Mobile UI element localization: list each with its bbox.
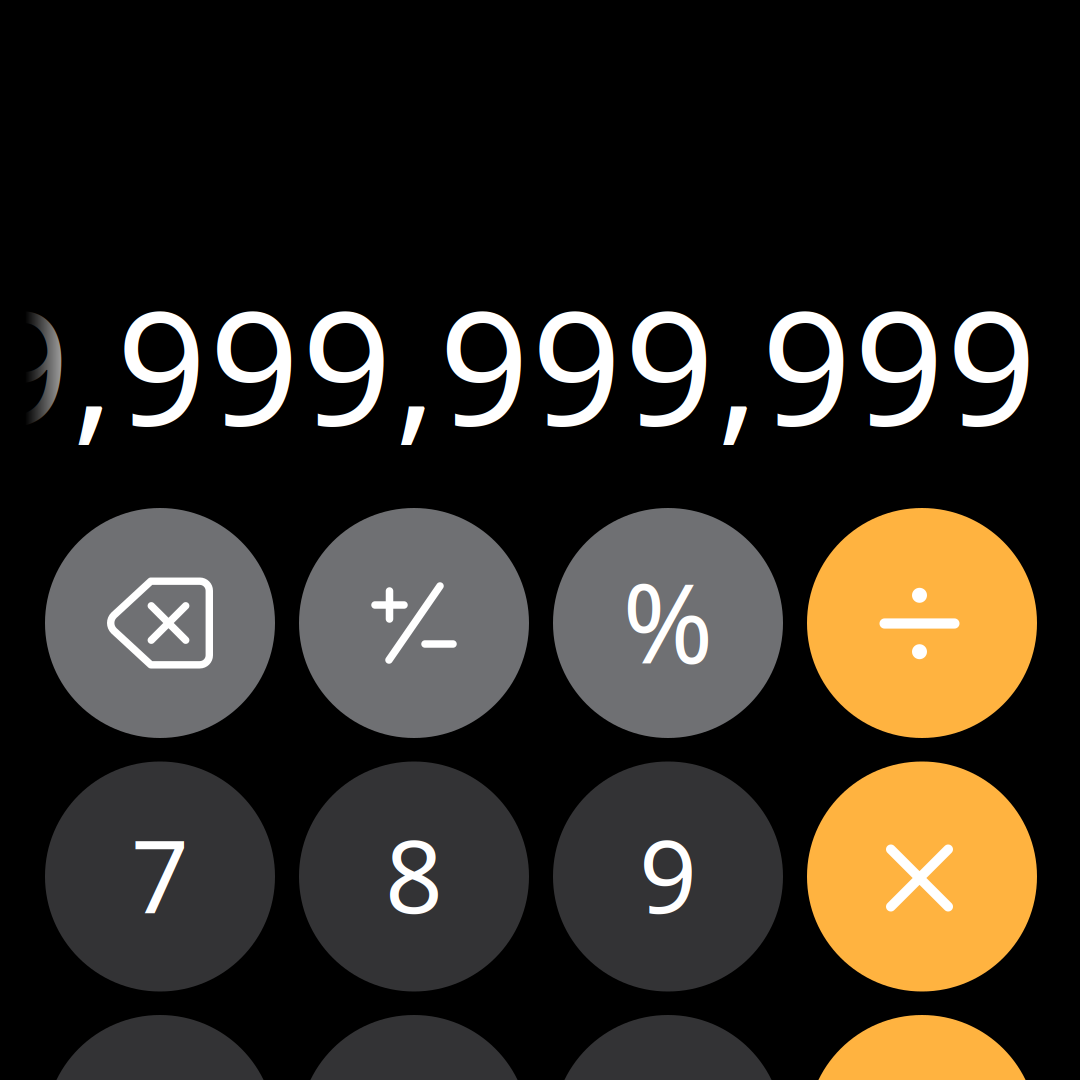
button[interactable]: Multiply [807, 761, 1037, 991]
button[interactable]: Delete [45, 508, 275, 738]
staticText: 9,999,999,999 [0, 259, 1037, 468]
staticText: 8 [385, 807, 443, 941]
button[interactable]: Plus minus [299, 508, 529, 738]
button[interactable]: Divide [807, 508, 1037, 738]
button[interactable]: 7 [45, 761, 275, 991]
button[interactable]: 9 [553, 761, 783, 991]
button[interactable]: 8 [299, 761, 529, 991]
staticText: % [622, 548, 713, 694]
button[interactable]: Minus [807, 1015, 1037, 1080]
button[interactable]: 6 [553, 1015, 783, 1080]
staticText: 7 [131, 807, 189, 941]
button[interactable]: 5 [299, 1015, 529, 1080]
button[interactable]: Percent [553, 508, 783, 738]
button[interactable]: 4 [45, 1015, 275, 1080]
staticText: 9 [639, 807, 697, 941]
